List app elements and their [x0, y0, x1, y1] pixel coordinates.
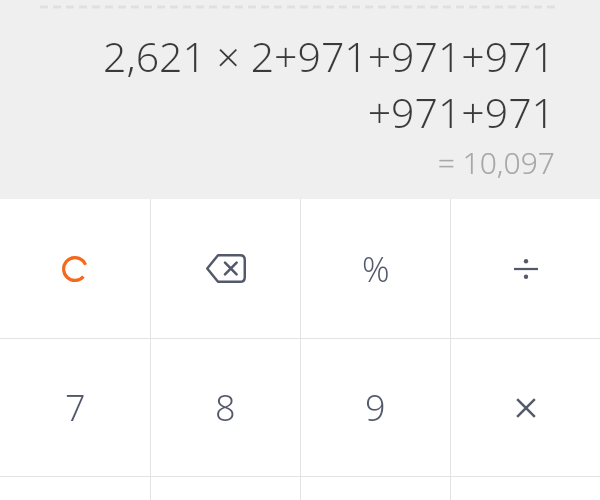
button[interactable]: 7: [0, 339, 150, 476]
button[interactable]: 9: [301, 339, 450, 476]
button[interactable]: Multiply: [451, 339, 600, 476]
staticText: 7: [65, 383, 86, 432]
staticText: 2,621 × 2+971+971+971: [24, 28, 555, 84]
staticText: = 10,097: [24, 142, 555, 183]
staticText: 8: [215, 383, 236, 432]
button[interactable]: 8: [151, 339, 300, 476]
button[interactable]: Percent: [301, 199, 450, 338]
button[interactable]: Clear: [0, 199, 150, 338]
staticText: %: [362, 246, 390, 292]
button[interactable]: Backspace: [151, 199, 300, 338]
button[interactable]: Divide: [451, 199, 600, 338]
staticText: +971+971: [24, 84, 555, 140]
staticText: 9: [365, 383, 386, 432]
